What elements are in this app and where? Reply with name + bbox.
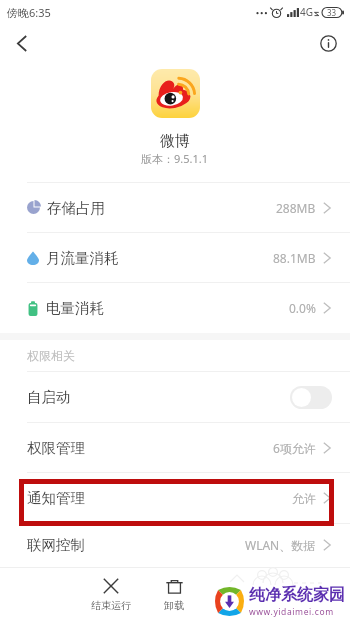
- staticText: 6项允许: [273, 440, 316, 456]
- staticText: 4G: [300, 5, 313, 19]
- staticText: 权限相关: [27, 348, 75, 363]
- staticText: 微博: [160, 132, 190, 151]
- staticText: 版本：9.5.1.1: [141, 151, 209, 166]
- staticText: www.yidaimei.com: [249, 606, 334, 618]
- button[interactable]: 联网控制: [0, 524, 350, 565]
- staticText: 权限管理: [27, 439, 85, 457]
- button[interactable]: 自启动: [0, 372, 350, 422]
- button[interactable]: Back: [0, 24, 44, 62]
- staticText: WLAN、数据: [245, 537, 316, 553]
- staticText: 联网控制: [27, 536, 85, 554]
- staticText: 自启动: [27, 388, 71, 406]
- staticText: 允许: [292, 491, 316, 506]
- staticText: 电量消耗: [46, 299, 104, 317]
- button[interactable]: 卸载: [154, 576, 194, 615]
- staticText: 0.0%: [289, 300, 316, 316]
- staticText: 卸载: [164, 599, 184, 612]
- staticText: 结束运行: [91, 599, 131, 612]
- button[interactable]: 权限管理: [0, 423, 350, 472]
- staticText: 通知管理: [27, 489, 85, 507]
- staticText: 288MB: [276, 200, 316, 216]
- staticText: 33: [327, 7, 337, 18]
- button[interactable]: 通知管理: [0, 473, 350, 523]
- button[interactable]: 月流量消耗: [0, 233, 350, 282]
- staticText: 傍晚6:35: [7, 5, 51, 20]
- button[interactable]: About app info: [306, 24, 350, 62]
- staticText: 纯净系统家园: [249, 585, 345, 605]
- staticText: 存储占用: [47, 199, 105, 217]
- staticText: 88.1MB: [273, 250, 316, 266]
- button[interactable]: 电量消耗: [0, 283, 350, 333]
- button[interactable]: 结束运行: [81, 575, 141, 615]
- button[interactable]: 存储占用: [0, 183, 350, 232]
- staticText: 月流量消耗: [46, 249, 119, 267]
